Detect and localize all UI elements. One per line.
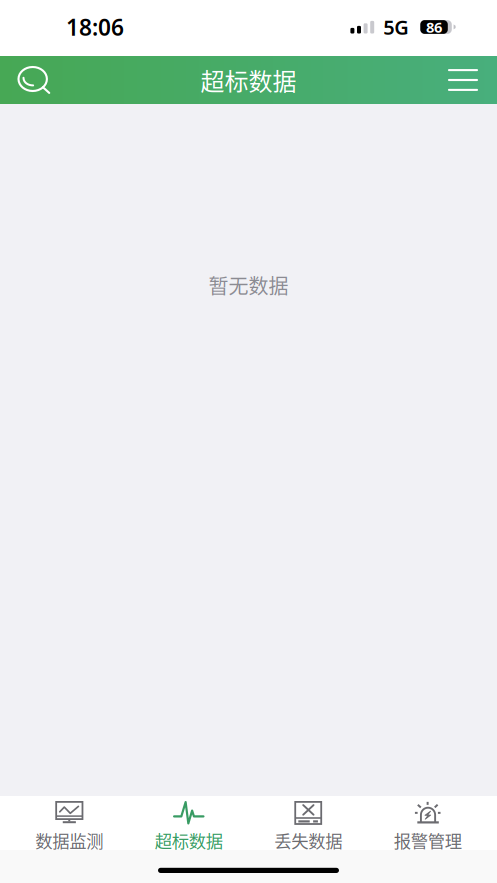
staticText: 暂无数据 <box>208 270 288 299</box>
staticText: 丢失数据 <box>274 828 342 853</box>
staticText: 86 <box>426 17 442 37</box>
button[interactable]: 超标数据 <box>129 796 248 850</box>
staticText: 超标数据 <box>155 828 223 853</box>
staticText: 18:06 <box>66 12 124 42</box>
staticText: 数据监测 <box>35 828 103 853</box>
staticText: 报警管理 <box>394 828 462 853</box>
staticText: 5G <box>383 14 409 40</box>
button[interactable]: 丢失数据 <box>248 796 368 850</box>
button[interactable]: Search <box>0 56 58 104</box>
button[interactable]: 数据监测 <box>10 796 129 850</box>
button[interactable]: Menu <box>439 56 497 104</box>
staticText: 超标数据 <box>200 63 296 97</box>
button[interactable]: 报警管理 <box>368 796 487 850</box>
